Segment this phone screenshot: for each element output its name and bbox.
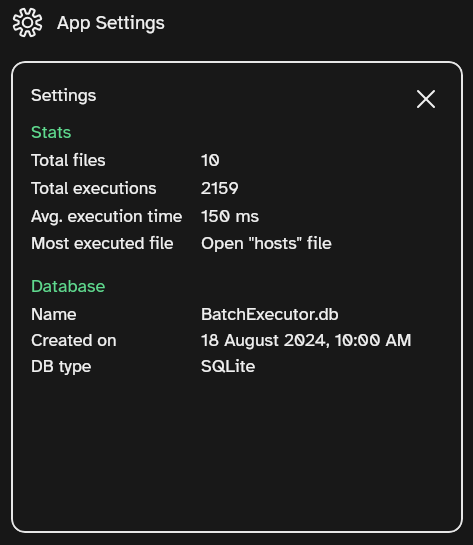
button[interactable]: Total executions bbox=[31, 177, 443, 198]
button[interactable]: DB type bbox=[31, 355, 443, 376]
button[interactable]: Avg. execution time bbox=[31, 205, 443, 226]
staticText: Name bbox=[31, 303, 201, 324]
button[interactable]: Created on bbox=[31, 329, 443, 350]
staticText: App Settings bbox=[57, 11, 165, 35]
button[interactable]: Name bbox=[31, 303, 443, 324]
staticText: 10 bbox=[201, 149, 220, 170]
staticText: Total files bbox=[31, 149, 201, 170]
staticText: Settings bbox=[31, 84, 97, 106]
staticText: Total executions bbox=[31, 177, 201, 198]
staticText: Stats bbox=[31, 121, 72, 143]
staticText: 18 August 2024, 10:00 AM bbox=[201, 329, 412, 350]
staticText: Most executed file bbox=[31, 232, 201, 253]
staticText: Avg. execution time bbox=[31, 205, 201, 226]
staticText: Database bbox=[31, 275, 106, 297]
staticText: DB type bbox=[31, 355, 201, 376]
button[interactable]: App settings bbox=[5, 0, 50, 45]
staticText: SQLite bbox=[201, 355, 256, 376]
button[interactable]: Close bbox=[408, 86, 444, 111]
staticText: Created on bbox=[31, 329, 201, 350]
button[interactable]: Total files bbox=[31, 149, 443, 170]
staticText: BatchExecutor.db bbox=[201, 303, 339, 324]
staticText: Open "hosts" file bbox=[201, 232, 332, 253]
button[interactable]: Most executed file bbox=[31, 232, 443, 253]
staticText: 2159 bbox=[201, 177, 240, 198]
staticText: 150 ms bbox=[201, 205, 260, 226]
